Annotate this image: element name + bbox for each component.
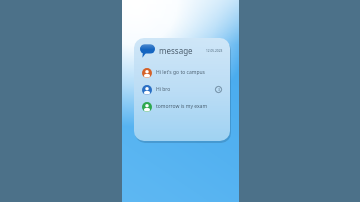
button[interactable]: Messages: [134, 38, 230, 141]
staticText: tomorrow is my exam: [156, 103, 208, 110]
button[interactable]: Hi bro: [140, 83, 224, 96]
button[interactable]: tomorrow is my exam: [140, 100, 224, 113]
staticText: Hi let's go to campus: [156, 69, 205, 76]
staticText: 12.05.2023: [206, 49, 223, 53]
staticText: Hi bro: [156, 86, 171, 93]
staticText: 3: [218, 87, 220, 92]
button[interactable]: Hi let's go to campus: [140, 66, 224, 79]
staticText: message: [159, 45, 193, 56]
other: Messages: [140, 43, 155, 58]
